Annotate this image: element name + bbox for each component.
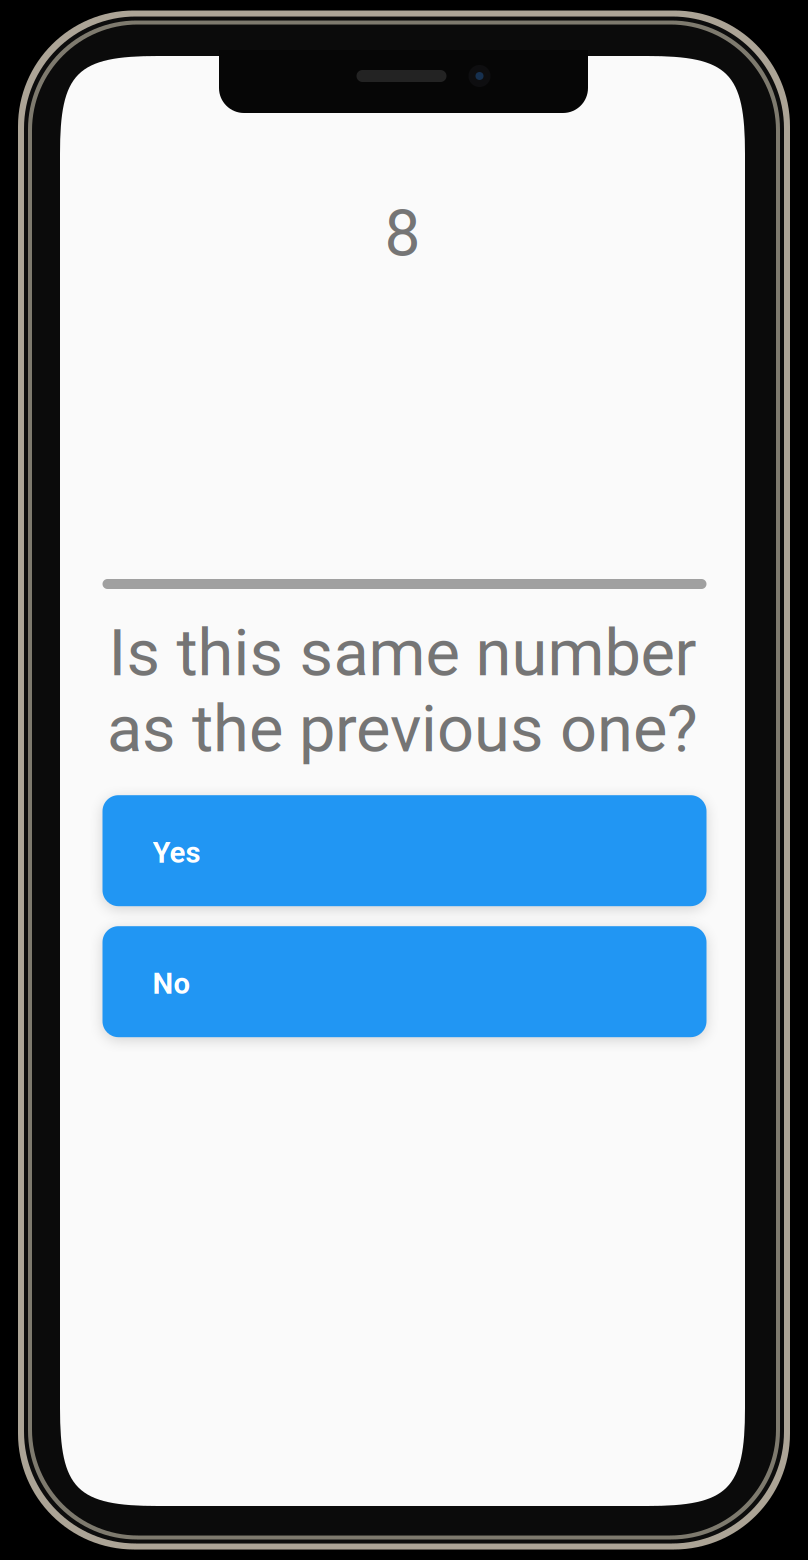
staticText: 8 bbox=[384, 196, 420, 271]
staticText: as the previous one? bbox=[107, 691, 698, 767]
staticText: Is this same number bbox=[108, 615, 696, 691]
button[interactable]: Yes bbox=[100, 795, 704, 906]
staticText: Yes bbox=[152, 835, 200, 870]
staticText: No bbox=[152, 966, 190, 1001]
button[interactable]: No bbox=[100, 926, 704, 1037]
